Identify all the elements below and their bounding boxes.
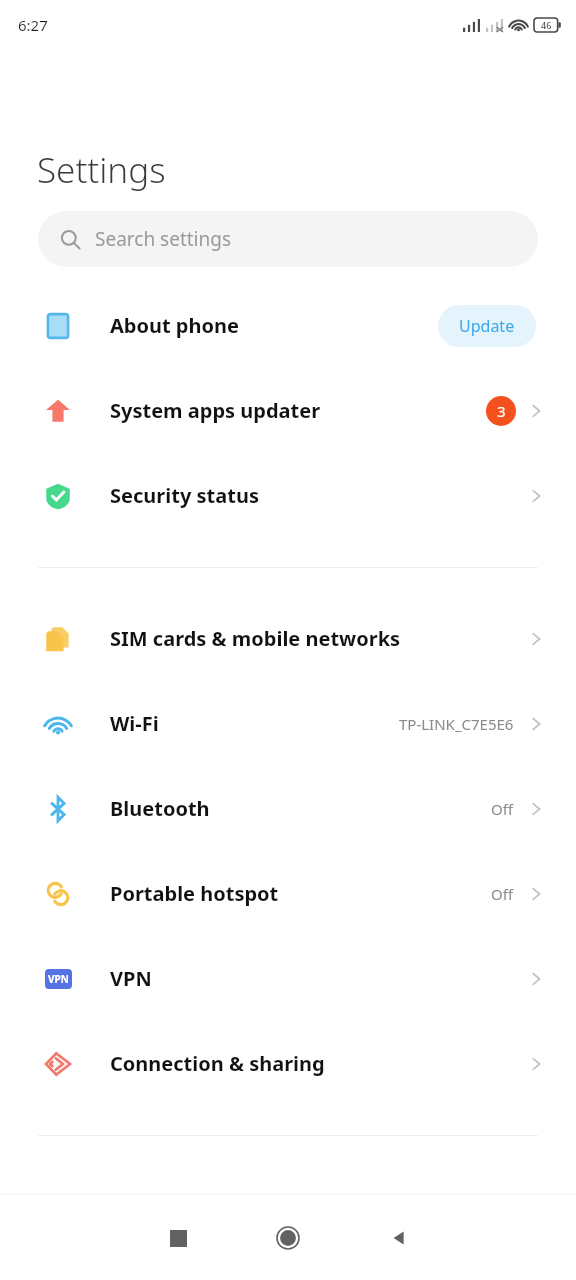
staticText: Update	[459, 315, 515, 337]
button[interactable]: Wi-Fi	[0, 681, 576, 766]
staticText: Security status	[110, 482, 259, 509]
button[interactable]: Security status	[0, 453, 576, 538]
button[interactable]: Back	[361, 1201, 435, 1275]
staticText: 3	[497, 401, 506, 421]
button[interactable]: SIM cards & mobile networks	[0, 596, 576, 681]
staticText: Off	[491, 884, 514, 904]
staticText: Portable hotspot	[110, 880, 279, 907]
button[interactable]: Recents	[141, 1201, 215, 1275]
staticText: Bluetooth	[110, 795, 210, 822]
staticText: VPN	[110, 965, 152, 992]
staticText: Off	[491, 799, 514, 819]
staticText: SIM cards & mobile networks	[110, 625, 401, 652]
button[interactable]: Search settings	[38, 211, 538, 267]
button[interactable]: System apps updater	[0, 368, 576, 453]
staticText: About phone	[110, 312, 239, 339]
button[interactable]: VPN	[0, 936, 576, 1021]
button[interactable]: Update	[438, 305, 536, 347]
staticText: 6:27	[18, 15, 48, 35]
staticText: Settings	[37, 146, 166, 194]
staticText: Wi-Fi	[110, 710, 159, 737]
button[interactable]: Portable hotspot	[0, 851, 576, 936]
staticText: Search settings	[95, 226, 232, 252]
staticText: 46	[541, 19, 552, 31]
button[interactable]: Connection & sharing	[0, 1021, 576, 1106]
staticText: VPN	[48, 972, 69, 986]
staticText: Connection & sharing	[110, 1050, 325, 1077]
button[interactable]: Home	[251, 1201, 325, 1275]
staticText: TP-LINK_C7E5E6	[399, 714, 514, 734]
button[interactable]: Bluetooth	[0, 766, 576, 851]
staticText: System apps updater	[110, 397, 321, 424]
button[interactable]: About phone	[0, 283, 576, 368]
